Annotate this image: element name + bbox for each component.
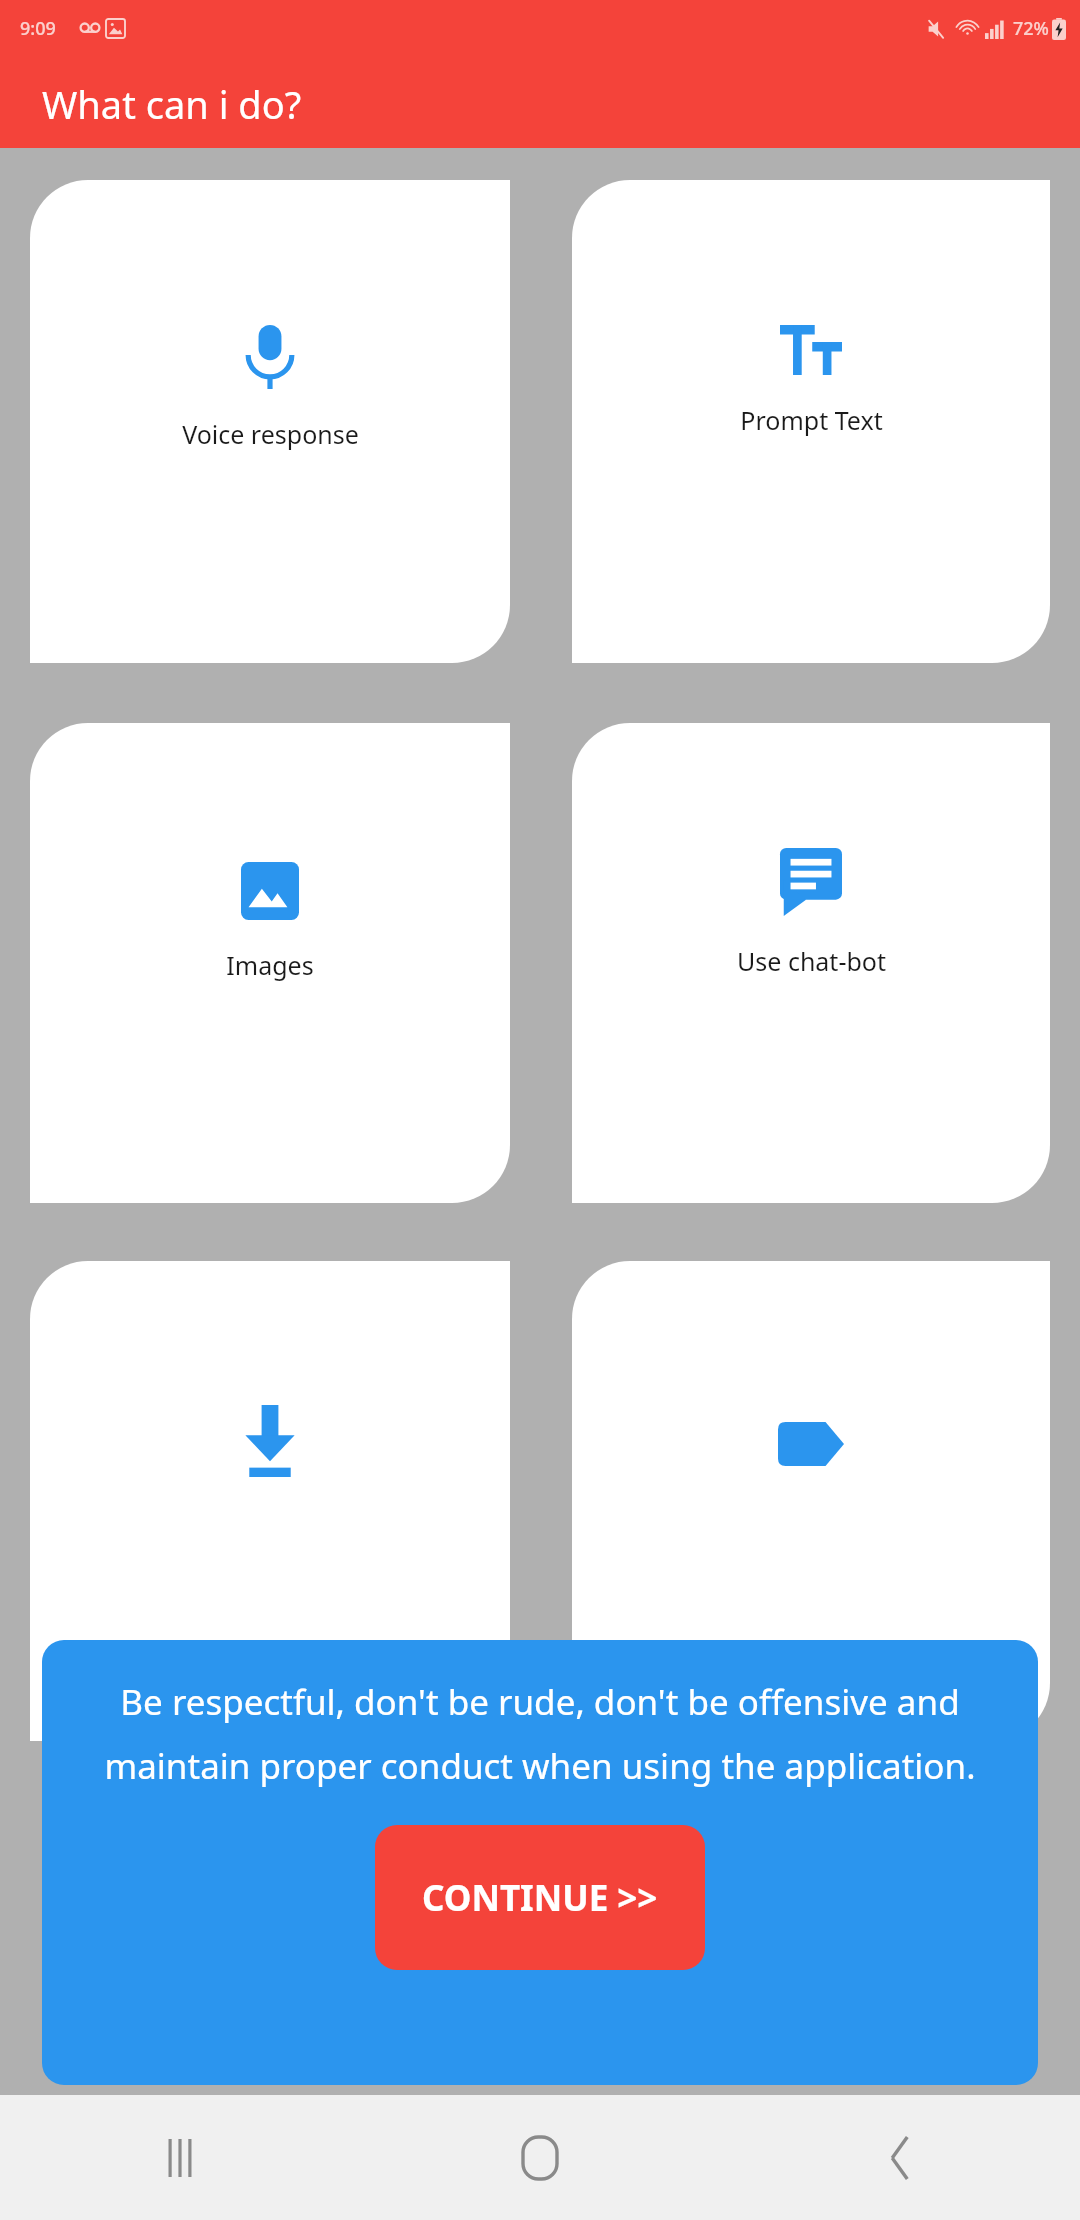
- staticText: Prompt Text: [740, 403, 883, 437]
- button[interactable]: Recents: [0, 2095, 360, 2220]
- button[interactable]: Use chat-bot: [572, 723, 1050, 1203]
- button[interactable]: Prompt Text: [572, 180, 1050, 663]
- staticText: What can i do?: [42, 78, 302, 130]
- button[interactable]: Back: [720, 2095, 1080, 2220]
- staticText: Use chat-bot: [737, 944, 886, 978]
- staticText: Be respectful, don't be rude, don't be o…: [64, 1678, 1016, 1789]
- button[interactable]: [572, 1261, 1050, 1741]
- button[interactable]: Voice response: [30, 180, 510, 663]
- staticText: Voice response: [182, 417, 359, 451]
- staticText: 72%: [1013, 16, 1049, 41]
- button[interactable]: [30, 1261, 510, 1741]
- button[interactable]: Images: [30, 723, 510, 1203]
- button[interactable]: Home: [360, 2095, 720, 2220]
- staticText: Images: [226, 948, 314, 982]
- button[interactable]: CONTINUE >>: [375, 1825, 705, 1970]
- staticText: 9:09: [20, 16, 56, 41]
- staticText: CONTINUE >>: [422, 1874, 658, 1922]
